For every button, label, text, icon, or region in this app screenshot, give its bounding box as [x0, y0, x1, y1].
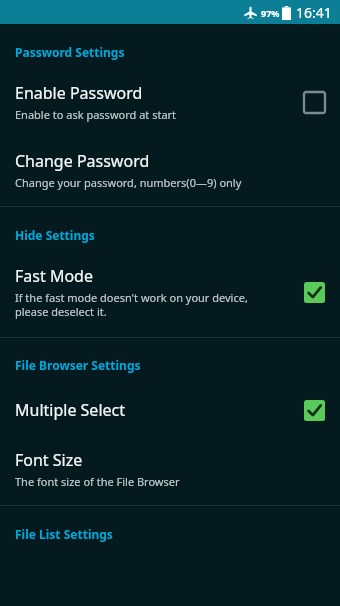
button[interactable]: Font Size	[0, 435, 340, 505]
staticText: File List Settings	[15, 526, 340, 542]
staticText: Multiple Select	[15, 399, 126, 421]
staticText: 97%	[261, 7, 280, 19]
staticText: Change Password	[15, 150, 150, 172]
other: Checked	[304, 282, 325, 303]
staticText: The font size of the File Browser	[15, 474, 180, 489]
staticText: Enable to ask password at start	[15, 107, 177, 122]
staticText: Enable Password	[15, 82, 143, 104]
staticText: If the fast mode doesn't work on your de…	[15, 290, 248, 319]
button[interactable]: Enable Password	[0, 60, 340, 136]
staticText: File Browser Settings	[15, 357, 340, 373]
button[interactable]: Fast Mode	[0, 243, 340, 337]
button[interactable]: Change Password	[0, 136, 340, 206]
other: Checked	[304, 400, 325, 421]
staticText: Fast Mode	[15, 265, 93, 287]
other: Unchecked	[304, 92, 325, 113]
staticText: Font Size	[15, 449, 83, 471]
staticText: Hide Settings	[15, 227, 340, 243]
button[interactable]: Multiple Select	[0, 373, 340, 435]
staticText: Password Settings	[15, 44, 340, 60]
staticText: Change your password, numbers(0—9) only	[15, 175, 242, 190]
staticText: 16:41	[296, 3, 332, 22]
